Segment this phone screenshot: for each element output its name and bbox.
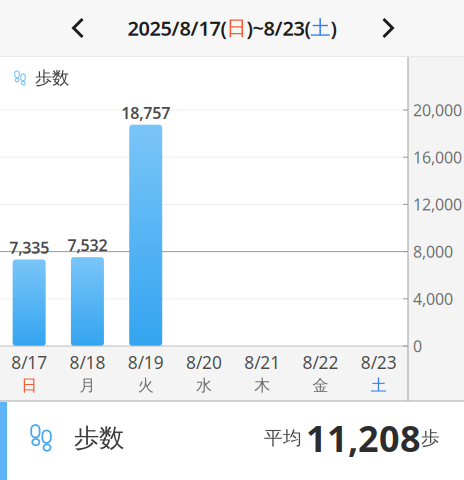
staticText: 歩 — [421, 426, 440, 449]
staticText: 8/23 — [361, 351, 397, 374]
staticText: 水 — [196, 376, 212, 395]
staticText: 7,532 — [67, 234, 107, 256]
staticText: 8/19 — [128, 351, 164, 374]
button[interactable]: 前の週 — [50, 6, 106, 50]
staticText: 16,000 — [413, 147, 462, 168]
staticText: 火 — [138, 376, 154, 395]
staticText: 0 — [413, 335, 422, 357]
staticText: 8/18 — [69, 351, 105, 374]
staticText: 8/17 — [11, 351, 47, 374]
button[interactable]: 2025/8/17( — [127, 15, 336, 41]
staticText: 土 — [310, 16, 330, 40]
staticText: 18,757 — [121, 102, 170, 123]
staticText: 歩数 — [74, 422, 124, 453]
staticText: 12,000 — [413, 194, 462, 215]
staticText: 2025/8/17( — [127, 15, 226, 41]
staticText: 月 — [79, 376, 95, 395]
staticText: 平均 — [264, 426, 302, 449]
staticText: 8/20 — [186, 351, 222, 374]
staticText: 土 — [371, 376, 387, 395]
staticText: 7,335 — [9, 237, 49, 258]
staticText: 11,208 — [306, 414, 421, 462]
staticText: 木 — [254, 376, 270, 395]
staticText: 金 — [313, 376, 329, 395]
staticText: 日 — [21, 376, 37, 395]
staticText: )~8/23( — [246, 15, 310, 41]
staticText: 歩数 — [35, 67, 69, 89]
staticText: 日 — [226, 16, 246, 40]
staticText: 8/21 — [244, 351, 280, 374]
button[interactable]: 歩数 — [28, 399, 440, 477]
staticText: ) — [330, 15, 336, 41]
staticText: 4,000 — [413, 288, 453, 309]
staticText: 8,000 — [413, 241, 453, 262]
staticText: 20,000 — [413, 99, 462, 121]
staticText: 8/22 — [303, 351, 339, 374]
button[interactable]: 次の週 — [360, 6, 416, 50]
